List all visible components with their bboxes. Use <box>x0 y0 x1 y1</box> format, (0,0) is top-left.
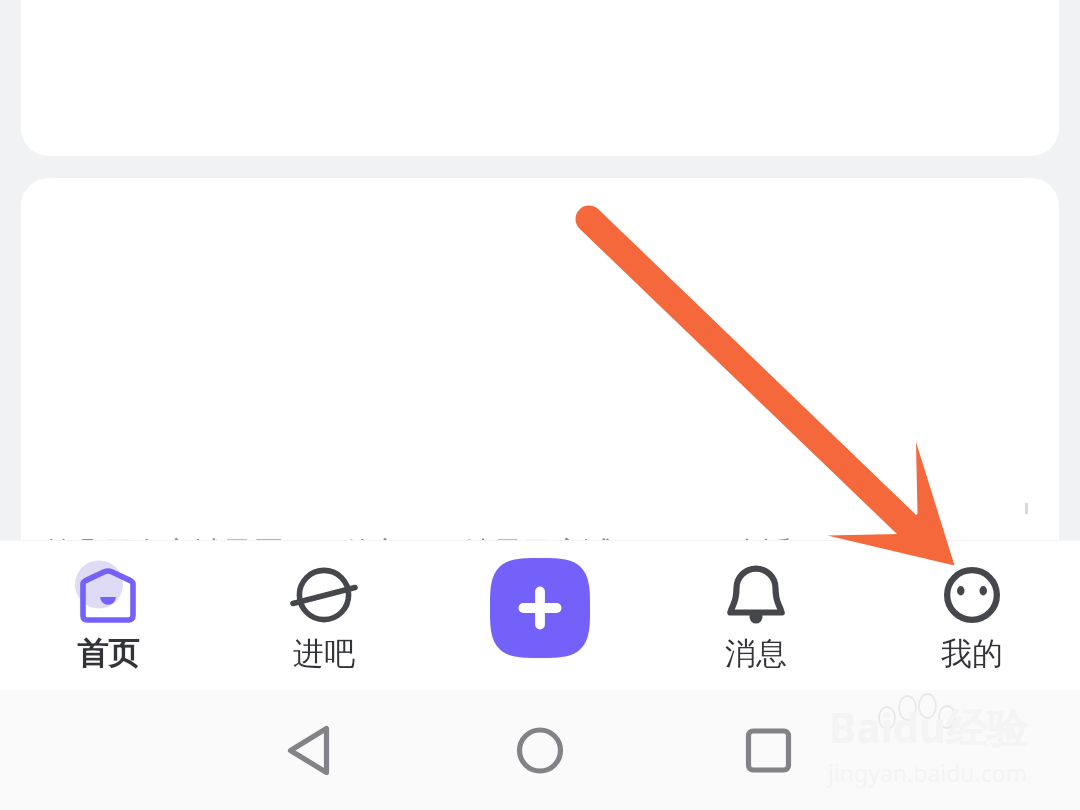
staticText: 消息 <box>725 634 787 673</box>
button[interactable]: Recent apps <box>653 690 883 810</box>
staticText: Baidu经验 <box>829 699 1028 755</box>
button[interactable]: 前几天在商城里买了一件衣服，结果回家试了一下不合适，于是想退 <box>21 178 1059 598</box>
button[interactable]: Back <box>193 690 423 810</box>
button[interactable]: 消息 <box>648 540 864 690</box>
staticText: 进吧 <box>293 634 355 673</box>
button[interactable]: 首页 <box>0 540 216 690</box>
button[interactable]: 进吧 <box>216 540 432 690</box>
staticText: 我的 <box>941 634 1003 673</box>
button[interactable]: 我的 <box>864 540 1080 690</box>
button[interactable]: Add post <box>432 540 648 690</box>
staticText: 前几天在商城里买了一件衣服，结果回家试了一下不合适，于是想退 <box>43 534 943 572</box>
button[interactable]: Home <box>423 690 653 810</box>
staticText: 首页 <box>77 634 139 673</box>
